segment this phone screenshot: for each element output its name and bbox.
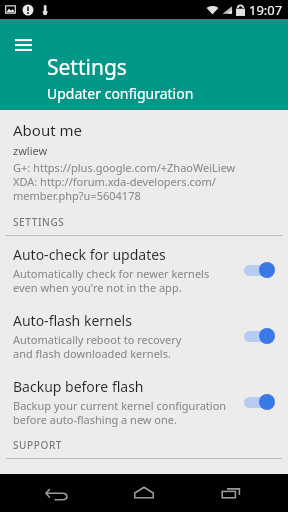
button[interactable]: Toggle setting xyxy=(243,260,277,280)
button[interactable]: Backup before flash xyxy=(0,368,288,434)
button[interactable]: Toggle setting xyxy=(243,326,277,346)
staticText: Settings xyxy=(47,53,127,82)
staticText: Updater configuration xyxy=(47,84,194,103)
staticText: Backup before flash xyxy=(13,377,144,396)
staticText: Auto-flash kernels xyxy=(13,311,132,330)
staticText: About me xyxy=(13,120,82,140)
button[interactable]: Home xyxy=(114,474,174,512)
staticText: SETTINGS xyxy=(13,215,65,229)
staticText: zwliew xyxy=(13,143,48,158)
button[interactable]: Toggle setting xyxy=(243,392,277,412)
staticText: Automatically check for newer kernels ev… xyxy=(13,266,210,295)
button[interactable]: Auto-check for updates xyxy=(0,236,288,302)
staticText: Backup your current kernel configuration… xyxy=(13,398,227,427)
staticText: Auto-check for updates xyxy=(13,245,166,264)
button[interactable]: Open navigation drawer xyxy=(9,31,37,59)
button[interactable]: Auto-flash kernels xyxy=(0,302,288,368)
staticText: SUPPORT xyxy=(13,438,63,452)
button[interactable]: Back xyxy=(27,474,87,512)
staticText: 19:07 xyxy=(249,1,283,19)
staticText: G+: https://plus.google.com/+ZhaoWeiLiew… xyxy=(13,160,236,203)
button[interactable]: About me xyxy=(0,110,288,211)
staticText: Automatically reboot to recovery and fla… xyxy=(13,332,182,361)
button[interactable]: Recent apps xyxy=(201,474,261,512)
